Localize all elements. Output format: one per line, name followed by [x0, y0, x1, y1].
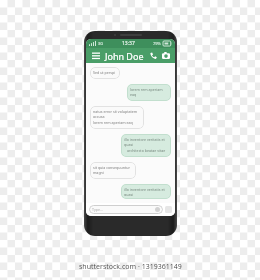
staticText: shutterstock.com · 1319361149 [79, 262, 182, 272]
staticText: 79% [153, 41, 161, 46]
staticText: lorem rem aperiam eaq [130, 87, 168, 97]
button[interactable]: illo inventore veritatis et quasi [121, 134, 171, 157]
button[interactable]: illo inventore veritatis et quasi [121, 184, 171, 199]
button[interactable]: Camera [160, 50, 171, 61]
staticText: sit quia consequuntur magni [93, 165, 133, 175]
button[interactable]: Sed ut perspi [90, 67, 120, 79]
staticText: illo inventore veritatis et quasi [124, 137, 168, 147]
button[interactable]: Call [148, 50, 159, 61]
button[interactable]: Type... [89, 205, 163, 214]
staticText: Type... [92, 207, 103, 212]
button[interactable]: lorem rem aperiam eaq [127, 84, 171, 101]
staticText: John Doe [105, 50, 144, 62]
button[interactable]: natus error sit voluptatem accusa [90, 106, 144, 129]
staticText: Sed ut perspi [93, 70, 116, 75]
staticText: illo inventore veritatis et quasi [124, 187, 168, 196]
staticText: 13:37 [122, 40, 135, 47]
button[interactable]: sit quia consequuntur magni [90, 162, 136, 179]
staticText: architecto beatae vitae [127, 148, 166, 153]
button[interactable]: Send [165, 206, 172, 213]
staticText: lorem rem aperiam eaq [93, 120, 133, 125]
staticText: 3G [98, 41, 104, 46]
other: Emoji [155, 207, 160, 212]
button[interactable]: Menu [90, 50, 101, 61]
staticText: natus error sit voluptatem accusa [93, 109, 141, 119]
